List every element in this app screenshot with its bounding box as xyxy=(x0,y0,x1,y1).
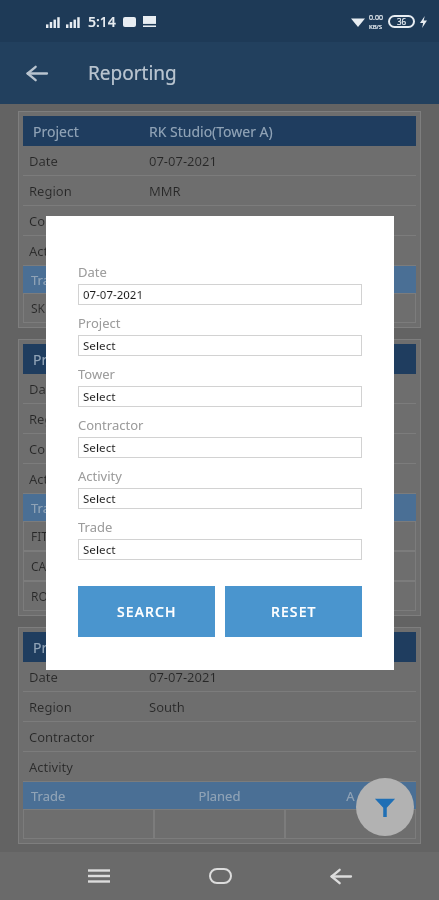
button[interactable]: Filter xyxy=(356,778,414,836)
staticText: A xyxy=(285,271,416,289)
staticText: Planed xyxy=(154,499,285,517)
staticText: Contractor xyxy=(29,440,149,458)
button[interactable]: Project xyxy=(18,339,421,616)
button[interactable]: RESET xyxy=(225,586,362,637)
button[interactable]: Project xyxy=(18,111,421,328)
staticText: RESET xyxy=(271,602,317,621)
staticText: Trade xyxy=(31,499,154,517)
button[interactable]: 07-07-2021 xyxy=(78,284,362,305)
staticText: SK xyxy=(31,300,46,316)
staticText: Select xyxy=(83,440,116,456)
staticText: A xyxy=(285,787,416,805)
staticText: Select xyxy=(83,389,116,405)
staticText: Select xyxy=(83,338,116,354)
staticText: Trade xyxy=(31,787,154,805)
staticText: CA xyxy=(31,558,47,574)
staticText: Contractor xyxy=(78,416,144,434)
button[interactable]: SEARCH xyxy=(78,586,215,637)
staticText: A xyxy=(285,499,416,517)
staticText: 0.00 xyxy=(369,13,383,23)
staticText: 5:14 xyxy=(88,12,116,31)
staticText: Activity xyxy=(78,467,122,485)
staticText: Trade xyxy=(78,518,113,536)
staticText: 36 xyxy=(397,16,407,27)
staticText: Date xyxy=(29,380,149,398)
staticText: Activity xyxy=(29,758,149,776)
staticText: Region xyxy=(29,410,149,428)
button[interactable]: Back xyxy=(20,57,52,89)
staticText: Project xyxy=(33,122,149,141)
button[interactable]: Recents xyxy=(77,854,121,898)
staticText: Contractor xyxy=(29,728,149,746)
staticText: Select xyxy=(83,491,116,507)
staticText: Reporting xyxy=(88,60,177,86)
staticText: Activity xyxy=(29,470,149,488)
staticText: South xyxy=(149,698,185,716)
staticText: Project xyxy=(33,638,149,657)
staticText: Planed xyxy=(154,271,285,289)
staticText: SEARCH xyxy=(117,602,177,621)
staticText: Project xyxy=(33,350,149,369)
button[interactable]: Back xyxy=(318,854,362,898)
button[interactable]: Home xyxy=(198,854,242,898)
button[interactable]: Select xyxy=(78,386,362,407)
staticText: 07-07-2021 xyxy=(83,287,144,303)
staticText: Planed xyxy=(154,787,285,805)
staticText: RK Studio(Tower A) xyxy=(149,122,273,141)
staticText: Tower xyxy=(78,365,115,383)
staticText: KB/S xyxy=(369,23,383,31)
staticText: Trade xyxy=(31,271,154,289)
staticText: RO xyxy=(31,588,48,604)
button[interactable]: Project xyxy=(18,627,421,844)
staticText: Select xyxy=(83,542,116,558)
button[interactable]: Select xyxy=(78,488,362,509)
staticText: Date xyxy=(29,668,149,686)
staticText: Activity xyxy=(29,242,149,260)
staticText: 07-07-2021 xyxy=(149,152,217,170)
staticText: 07-07-2021 xyxy=(149,668,217,686)
staticText: Contractor xyxy=(29,212,149,230)
staticText: MMR xyxy=(149,182,181,200)
staticText: Date xyxy=(78,263,107,281)
staticText: Region xyxy=(29,182,149,200)
staticText: Project xyxy=(78,314,121,332)
staticText: Region xyxy=(29,698,149,716)
button[interactable]: Select xyxy=(78,335,362,356)
button[interactable]: Select xyxy=(78,539,362,560)
staticText: Date xyxy=(29,152,149,170)
button[interactable]: Select xyxy=(78,437,362,458)
staticText: FIT xyxy=(31,528,48,544)
